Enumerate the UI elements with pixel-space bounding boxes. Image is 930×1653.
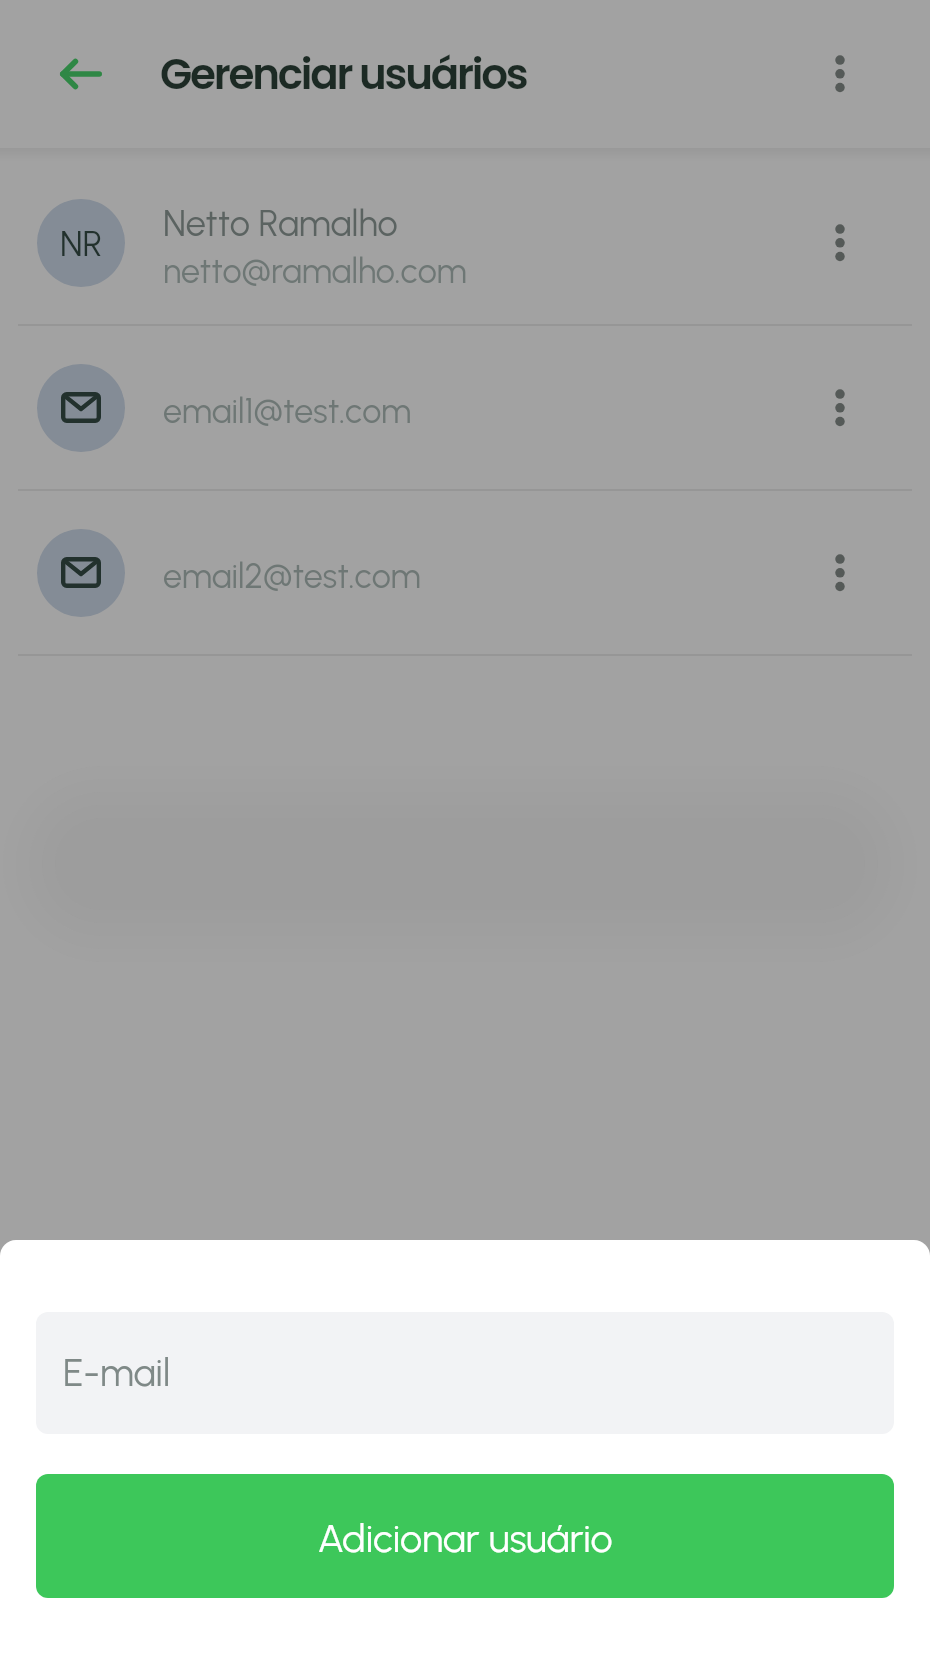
staticText: email2@test.com — [163, 556, 421, 597]
button[interactable]: E-mail — [36, 1312, 894, 1434]
staticText: Gerenciar usuários — [160, 45, 527, 104]
staticText: Netto Ramalho — [163, 202, 398, 245]
button[interactable]: Adicionar usuário — [36, 1474, 894, 1598]
button[interactable]: NR — [0, 161, 930, 324]
staticText: E-mail — [63, 1350, 171, 1396]
button[interactable]: User options — [792, 525, 888, 621]
button[interactable]: email2@test.com — [0, 491, 930, 654]
button[interactable]: User options — [792, 195, 888, 291]
button[interactable]: email1@test.com — [0, 326, 930, 489]
staticText: Adicionar usuário — [317, 1515, 613, 1562]
button[interactable]: More options — [792, 26, 888, 122]
staticText: netto@ramalho.com — [163, 251, 467, 292]
staticText: NR — [60, 222, 103, 265]
button[interactable]: User options — [792, 360, 888, 456]
staticText: email1@test.com — [163, 391, 412, 432]
button[interactable]: Back — [33, 26, 129, 122]
